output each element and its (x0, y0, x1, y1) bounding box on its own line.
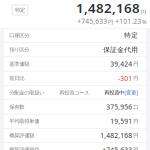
staticText: 39,424 (110, 60, 132, 68)
staticText: 円 (133, 61, 138, 67)
staticText: 375,956 (106, 102, 132, 111)
staticText: 円 (108, 19, 113, 26)
staticText: 預り区分 (9, 46, 29, 53)
staticText: 円 (133, 118, 138, 124)
staticText: 保証金代用 (103, 46, 138, 54)
staticText: 口 (133, 104, 138, 110)
staticText: 分配金の取扱い (9, 89, 44, 96)
button[interactable]: [変更] (124, 89, 138, 96)
staticText: +745,633 (77, 17, 107, 26)
staticText: 概算評価損益 (9, 146, 39, 150)
staticText: 円 (133, 132, 138, 139)
staticText: 再投資コース (59, 89, 89, 96)
staticText: -301 (118, 74, 132, 83)
staticText: +101.23 (115, 17, 141, 26)
button[interactable]: 特定 (12, 5, 28, 15)
staticText: 再投資中 (104, 89, 124, 96)
staticText: +745,633 (102, 145, 132, 150)
staticText: 円 (141, 9, 146, 16)
staticText: % (142, 18, 146, 26)
staticText: 概算評価額 (9, 132, 34, 139)
staticText: 1,482,168 (100, 131, 132, 140)
staticText: 円 (133, 75, 138, 82)
staticText: 口座区分 (9, 32, 29, 39)
staticText: 保有数 (9, 104, 24, 110)
staticText: [変更] (124, 89, 138, 96)
staticText: 円 (133, 146, 138, 150)
staticText: 特定 (15, 7, 25, 13)
staticText: 1,482,168 (76, 0, 140, 17)
staticText: 19,591 (110, 117, 132, 126)
staticText: 平均取得単価 (9, 118, 39, 124)
staticText: 特定 (124, 31, 138, 39)
staticText: 前日比 (9, 75, 24, 82)
staticText: 基準価額 (9, 61, 29, 67)
